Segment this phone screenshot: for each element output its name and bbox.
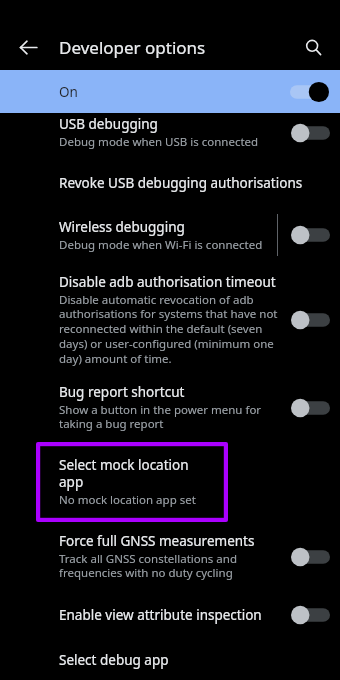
button[interactable]: Enable view attribute inspection (0, 591, 340, 639)
button[interactable]: Disable adb authorisation timeout (0, 264, 340, 376)
staticText: No mock location app set (59, 492, 196, 508)
button[interactable]: Force full GNSS measurements (0, 522, 340, 591)
button[interactable]: Back (8, 27, 48, 67)
staticText: USB debugging (59, 115, 158, 133)
button[interactable]: Toggle on (290, 81, 330, 103)
button[interactable]: Bug report shortcut (0, 376, 340, 439)
button[interactable]: Toggle off (290, 397, 330, 419)
button[interactable]: Wireless debugging (0, 206, 340, 264)
staticText: Select debug app (59, 651, 169, 669)
staticText: Wireless debugging (59, 218, 185, 236)
button[interactable]: Toggle off (290, 604, 330, 626)
button[interactable]: Select debug app (0, 639, 340, 680)
staticText: Developer options (59, 36, 293, 59)
staticText: On (59, 83, 290, 101)
button[interactable]: Toggle off (290, 309, 330, 331)
button[interactable]: Select mock location app (36, 442, 228, 522)
button[interactable]: Toggle off (290, 122, 330, 144)
staticText: Select mock location app (59, 456, 214, 491)
button[interactable]: USB debugging (0, 113, 340, 160)
staticText: Bug report shortcut (59, 383, 185, 401)
staticText: Revoke USB debugging authorisations (59, 174, 303, 192)
button[interactable]: Revoke USB debugging authorisations (0, 160, 340, 206)
button[interactable]: Search (293, 27, 333, 67)
button[interactable]: On (0, 70, 340, 113)
staticText: Show a button in the power menu for taki… (59, 402, 282, 432)
button[interactable]: Toggle off (290, 224, 330, 246)
staticText: Enable view attribute inspection (59, 606, 262, 624)
staticText: Force full GNSS measurements (59, 532, 255, 550)
staticText: Debug mode when Wi-Fi is connected (59, 237, 263, 253)
button[interactable]: Toggle off (290, 546, 330, 568)
staticText: Disable automatic revocation of adb auth… (59, 292, 282, 367)
staticText: Track all GNSS constellations and freque… (59, 551, 282, 581)
staticText: Debug mode when USB is connected (59, 134, 259, 150)
staticText: Disable adb authorisation timeout (59, 273, 276, 291)
